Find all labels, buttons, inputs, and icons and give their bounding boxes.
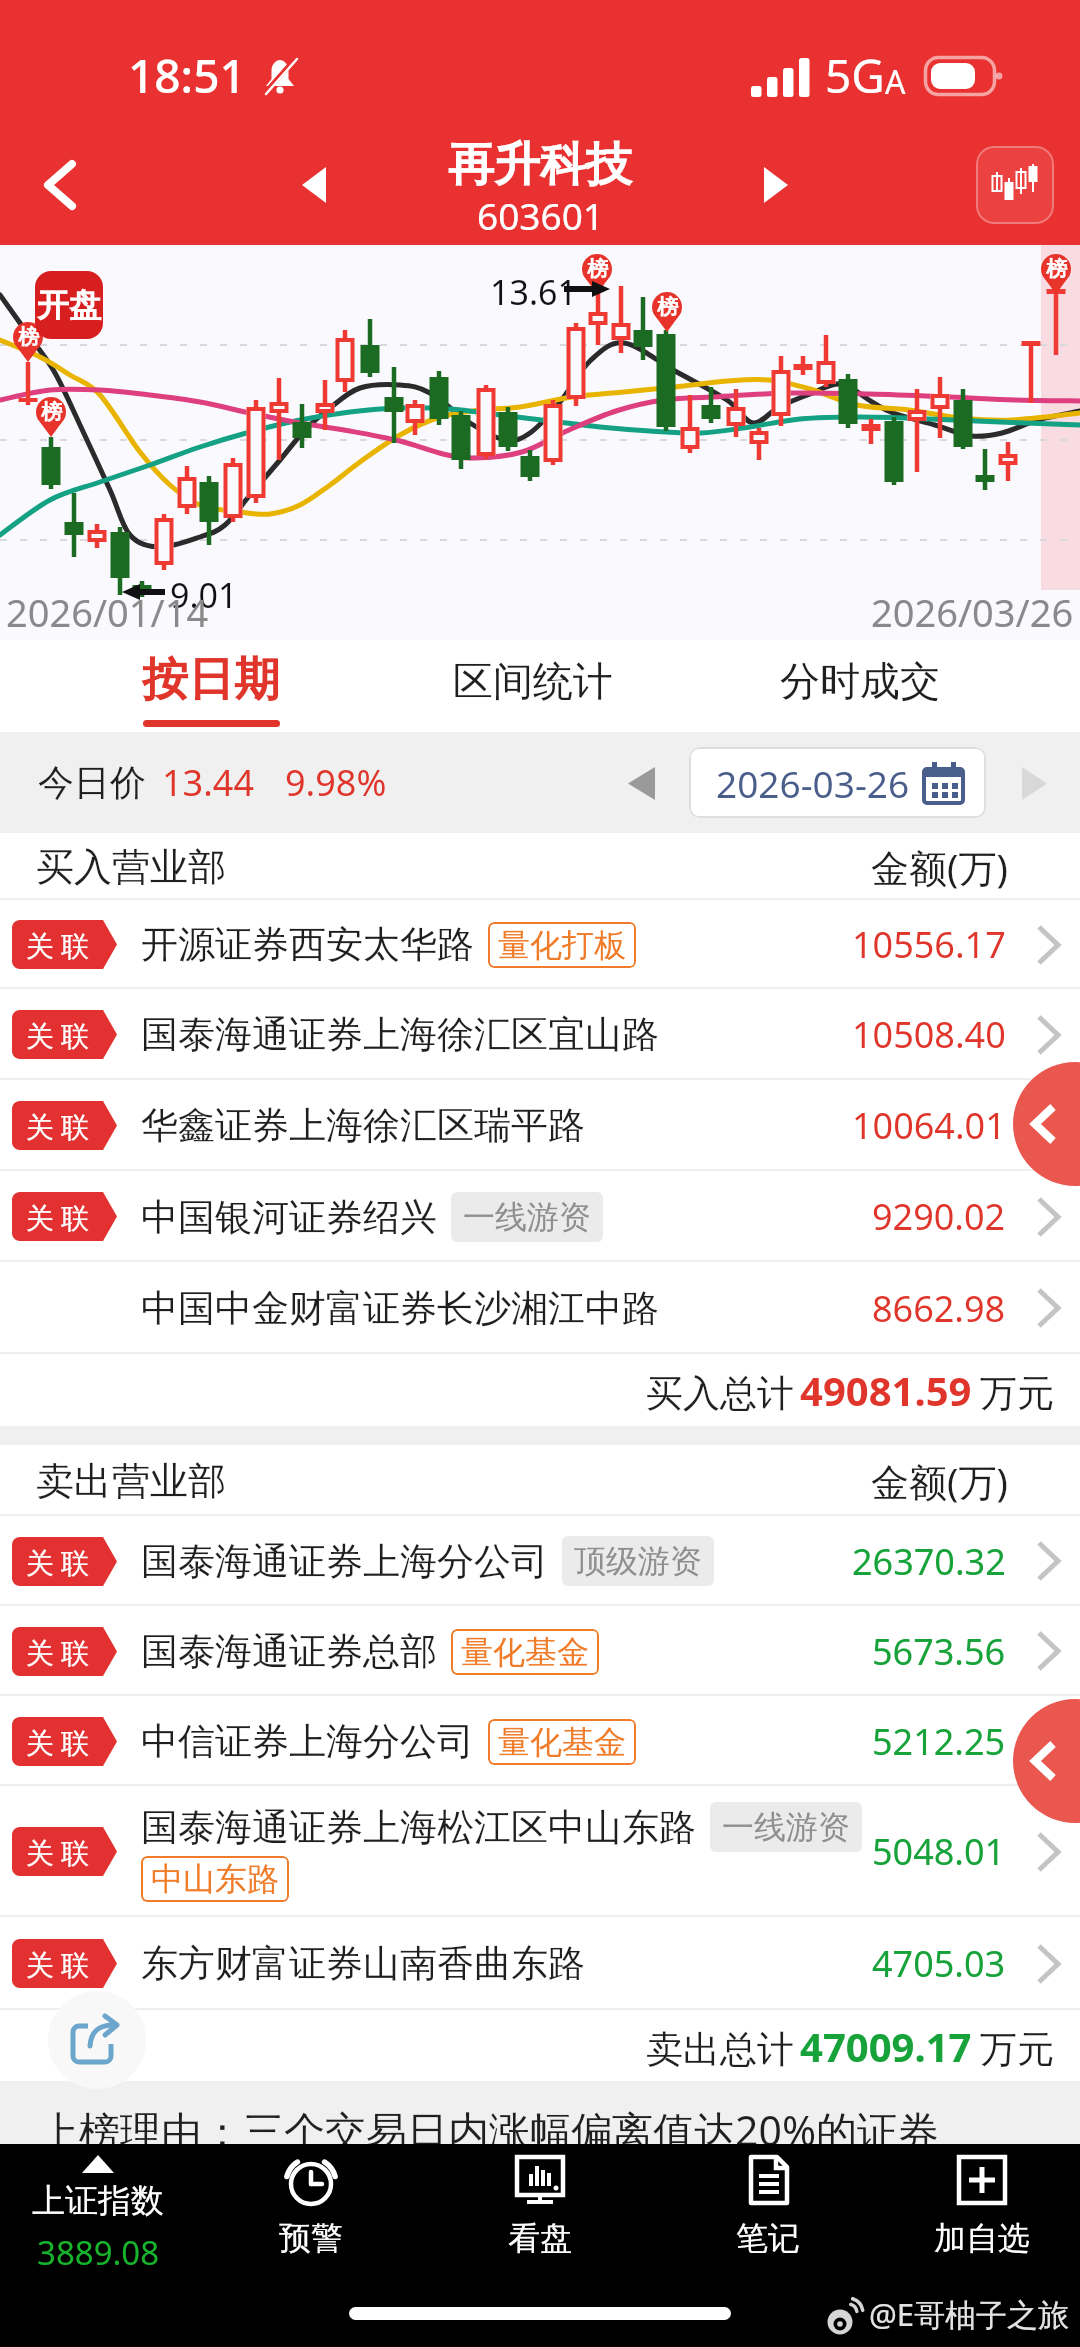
button[interactable]: 中国中金财富证券长沙湘江中路 — [0, 1262, 1080, 1354]
staticText: 关 联 — [26, 1945, 90, 1983]
staticText: 一线游资 — [463, 1197, 591, 1237]
staticText: 2026/01/14 — [6, 586, 209, 638]
staticText: 开源证券西安太华路 — [141, 921, 474, 968]
staticText: 笔记 — [736, 2218, 800, 2258]
staticText: 榜 — [587, 256, 608, 282]
button[interactable]: 加自选 — [892, 2144, 1072, 2269]
staticText: 13.61 — [490, 269, 577, 315]
staticText: 47009.17 — [800, 2019, 972, 2073]
staticText: 顶级游资 — [574, 1541, 702, 1581]
staticText: 26370.32 — [852, 1537, 1006, 1586]
staticText: 华鑫证券上海徐汇区瑞平路 — [141, 1102, 585, 1149]
staticText: 5212.25 — [872, 1717, 1006, 1766]
staticText: 万元 — [980, 1370, 1054, 1417]
staticText: 9.01 — [170, 572, 238, 618]
button[interactable]: 上证指数 — [8, 2144, 188, 2269]
staticText: 603601 — [477, 190, 604, 240]
staticText: 榜 — [1046, 256, 1067, 282]
staticText: 10508.40 — [852, 1010, 1006, 1059]
staticText: 18:51 — [128, 44, 246, 107]
staticText: 上证指数 — [32, 2180, 164, 2222]
staticText: 中国银河证券绍兴 — [141, 1194, 437, 1241]
staticText: 2026-03-26 — [716, 758, 910, 808]
staticText: @E哥柚子之旅 — [869, 2293, 1070, 2335]
staticText: 2026/03/26 — [871, 586, 1074, 638]
button[interactable]: K-line chart — [976, 146, 1054, 224]
button[interactable]: 关 联 — [0, 1786, 1080, 1917]
button[interactable]: 开盘 — [35, 271, 103, 339]
staticText: 5673.56 — [872, 1627, 1006, 1676]
staticText: 中国中金财富证券长沙湘江中路 — [141, 1285, 659, 1332]
staticText: 卖出营业部 — [36, 1457, 226, 1505]
staticText: 关 联 — [26, 926, 90, 964]
button[interactable]: Share — [48, 1991, 146, 2089]
staticText: 10556.17 — [852, 920, 1006, 969]
staticText: 关 联 — [26, 1633, 90, 1671]
staticText: 加自选 — [934, 2218, 1030, 2258]
button[interactable]: Back — [16, 141, 104, 229]
button[interactable]: 笔记 — [678, 2144, 858, 2269]
button[interactable]: 看盘 — [450, 2144, 630, 2269]
button[interactable]: 关 联 — [0, 1917, 1080, 2010]
staticText: 关 联 — [26, 1833, 90, 1871]
staticText: 49081.59 — [800, 1363, 972, 1417]
staticText: 买入营业部 — [36, 843, 226, 891]
staticText: 9.98% — [285, 758, 387, 807]
staticText: 再升科技 — [448, 136, 632, 194]
staticText: 10064.01 — [852, 1101, 1006, 1150]
staticText: 中山东路 — [151, 1859, 279, 1899]
staticText: 量化基金 — [461, 1632, 589, 1672]
button[interactable]: 2026-03-26 — [689, 747, 986, 818]
button[interactable]: 关 联 — [0, 1516, 1080, 1606]
staticText: 9290.02 — [872, 1192, 1006, 1241]
staticText: 关 联 — [26, 1107, 90, 1145]
button[interactable]: Open panel — [1013, 1699, 1080, 1823]
staticText: 国泰海通证券上海分公司 — [141, 1538, 548, 1585]
staticText: 按日期 — [142, 651, 280, 709]
staticText: 分时成交 — [780, 656, 940, 706]
staticText: 关 联 — [26, 1016, 90, 1054]
staticText: 榜 — [18, 324, 39, 350]
button[interactable]: 关 联 — [0, 1171, 1080, 1262]
button[interactable]: 预警 — [221, 2144, 401, 2269]
staticText: 中信证券上海分公司 — [141, 1718, 474, 1765]
staticText: 东方财富证券山南香曲东路 — [141, 1940, 585, 1987]
staticText: 关 联 — [26, 1723, 90, 1761]
staticText: 卖出总计 — [646, 2026, 794, 2073]
staticText: 买入总计 — [646, 1370, 794, 1417]
staticText: 一线游资 — [722, 1807, 850, 1847]
staticText: 榜 — [657, 294, 678, 320]
button[interactable]: Next stock — [735, 145, 815, 225]
staticText: 13.44 — [162, 758, 255, 807]
staticText: 国泰海通证券上海徐汇区宜山路 — [141, 1011, 659, 1058]
staticText: 国泰海通证券总部 — [141, 1628, 437, 1675]
button[interactable]: 按日期 — [48, 640, 374, 732]
staticText: 万元 — [980, 2026, 1054, 2073]
button[interactable]: Previous day — [616, 757, 668, 809]
button[interactable]: 区间统计 — [374, 640, 692, 732]
button[interactable]: Previous stock — [275, 145, 355, 225]
staticText: 国泰海通证券上海松江区中山东路 — [141, 1804, 696, 1851]
button[interactable]: 关 联 — [0, 1696, 1080, 1786]
staticText: 8662.98 — [872, 1284, 1006, 1333]
staticText: 4705.03 — [872, 1939, 1006, 1988]
staticText: 量化基金 — [498, 1722, 626, 1762]
staticText: 3889.08 — [37, 2230, 160, 2269]
staticText: 5048.01 — [872, 1827, 1006, 1876]
staticText: 榜 — [41, 399, 62, 425]
staticText: 开盘 — [37, 285, 101, 325]
button[interactable]: 关 联 — [0, 1080, 1080, 1171]
staticText: 量化打板 — [498, 925, 626, 965]
staticText: 区间统计 — [453, 656, 613, 706]
staticText: 上榜理由：三个交易日内涨幅偏离值达20%的证券 — [38, 2102, 939, 2158]
button[interactable]: 关 联 — [0, 989, 1080, 1080]
button[interactable]: 关 联 — [0, 1606, 1080, 1696]
staticText: 预警 — [279, 2218, 343, 2258]
button[interactable]: Next day — [1008, 757, 1060, 809]
button[interactable]: 关 联 — [0, 900, 1080, 989]
staticText: 金额(万) — [871, 1455, 1008, 1507]
staticText: 关 联 — [26, 1198, 90, 1236]
staticText: A — [885, 60, 906, 104]
button[interactable]: 分时成交 — [700, 640, 1020, 732]
button[interactable]: Open panel — [1013, 1062, 1080, 1186]
